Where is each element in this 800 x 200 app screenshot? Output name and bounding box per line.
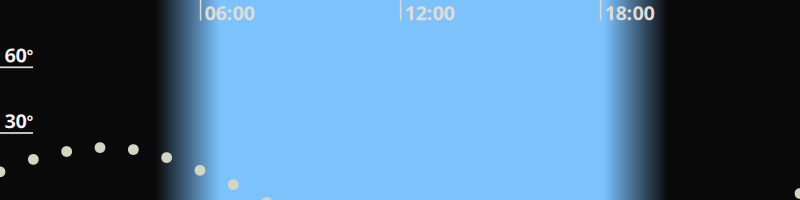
staticText: 18:00 bbox=[604, 0, 654, 26]
staticText: 06:00 bbox=[204, 0, 254, 26]
staticText: 12:00 bbox=[404, 0, 454, 26]
staticText: 30° bbox=[4, 107, 33, 134]
staticText: 60° bbox=[4, 41, 33, 68]
